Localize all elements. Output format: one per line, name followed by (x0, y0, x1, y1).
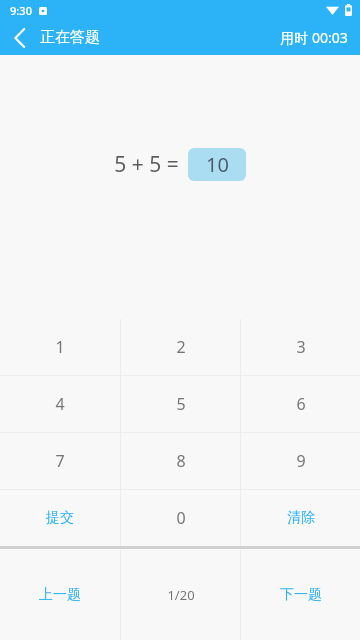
button[interactable]: 8 (121, 433, 240, 489)
button[interactable]: 3 (241, 319, 360, 375)
staticText: 9:30 (10, 3, 32, 18)
staticText: 用时 00:03 (280, 28, 348, 47)
staticText: 5 + 5 = (114, 150, 179, 179)
button[interactable]: 9 (241, 433, 360, 489)
staticText: 4 (55, 393, 65, 415)
button[interactable]: 5 (121, 376, 240, 432)
staticText: 10 (206, 151, 229, 178)
button[interactable]: 1/20 (121, 549, 240, 640)
staticText: 7 (55, 450, 65, 472)
button[interactable]: 返回 (0, 20, 40, 55)
button[interactable]: 10 (188, 148, 246, 181)
staticText: 1 (55, 336, 65, 358)
staticText: 上一题 (39, 586, 81, 604)
button[interactable]: 4 (0, 376, 120, 432)
staticText: 正在答题 (40, 28, 100, 47)
button[interactable]: 7 (0, 433, 120, 489)
button[interactable]: 6 (241, 376, 360, 432)
button[interactable]: 提交 (0, 490, 120, 546)
staticText: 1/20 (167, 586, 195, 604)
staticText: 3 (296, 336, 306, 358)
staticText: 8 (176, 450, 186, 472)
staticText: 6 (296, 393, 306, 415)
staticText: 2 (176, 336, 186, 358)
staticText: 0 (176, 507, 186, 529)
staticText: 清除 (287, 509, 315, 527)
staticText: 下一题 (280, 586, 322, 604)
button[interactable]: 清除 (241, 490, 360, 546)
button[interactable]: 1 (0, 319, 120, 375)
button[interactable]: 下一题 (241, 549, 360, 640)
staticText: 9 (296, 450, 306, 472)
staticText: 提交 (46, 509, 74, 527)
button[interactable]: 上一题 (0, 549, 120, 640)
button[interactable]: 0 (121, 490, 240, 546)
staticText: 5 (176, 393, 186, 415)
button[interactable]: 2 (121, 319, 240, 375)
